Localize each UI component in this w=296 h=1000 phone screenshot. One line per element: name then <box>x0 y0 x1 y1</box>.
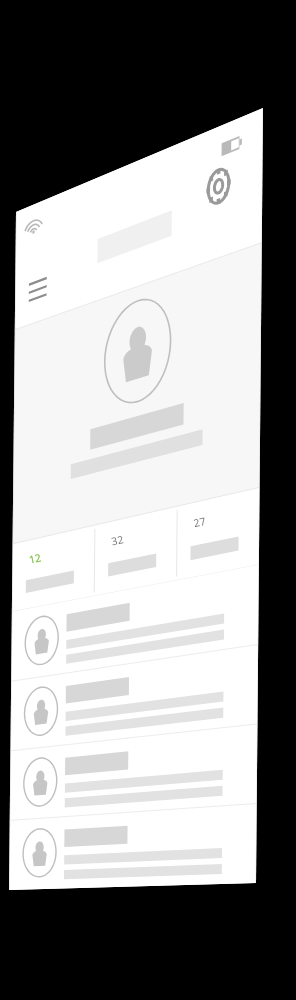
button[interactable] <box>0 0 296 1000</box>
other: Profile wireframe mockup <box>0 0 296 1000</box>
